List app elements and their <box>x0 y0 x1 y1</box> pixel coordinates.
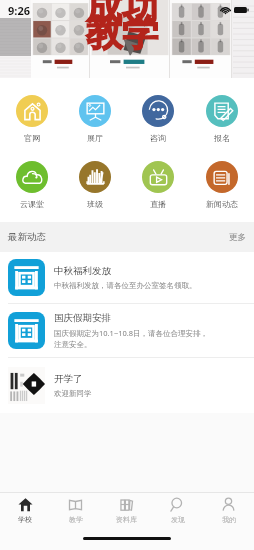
staticText: 国庆假期定为10.1~10.8日，请各位合理安排， 注意安全。 <box>54 328 209 349</box>
staticText: 最新动态 <box>8 231 46 243</box>
staticText: 直播 <box>150 199 166 209</box>
staticText: 新闻动态 <box>206 199 238 209</box>
staticText: 发现 <box>171 515 185 524</box>
button[interactable]: 发现 <box>152 497 203 524</box>
staticText: 成功 <box>86 0 158 30</box>
button[interactable]: 教学 <box>50 497 101 524</box>
button[interactable]: 官网 <box>0 95 63 143</box>
staticText: 教学 <box>86 10 158 55</box>
button[interactable]: 云课堂 <box>0 161 63 209</box>
staticText: 我的 <box>222 515 236 524</box>
staticText: 开学了 <box>54 373 83 385</box>
staticText: 中秋福利发放 <box>54 265 111 277</box>
button[interactable]: 中秋福利发放 <box>0 252 254 303</box>
staticText: 9:26 <box>8 3 30 18</box>
staticText: 云课堂 <box>20 199 44 209</box>
staticText: 教学 <box>69 515 83 524</box>
staticText: 学校 <box>18 515 32 524</box>
button[interactable]: 班级 <box>63 161 126 209</box>
button[interactable]: 更多 <box>229 232 246 243</box>
staticText: 报名 <box>214 133 230 143</box>
button[interactable]: 开学了 <box>0 358 254 413</box>
staticText: 官网 <box>24 133 40 143</box>
button[interactable]: 直播 <box>126 161 190 209</box>
staticText: 咨询 <box>150 133 166 143</box>
staticText: 国庆假期安排 <box>54 312 111 324</box>
staticText: 中秋福利发放，请各位至办公室签名领取。 <box>54 281 197 290</box>
staticText: 欢迎新同学 <box>54 389 92 398</box>
button[interactable]: 国庆假期安排 <box>0 304 254 357</box>
button[interactable]: 报名 <box>190 95 254 143</box>
button[interactable]: 展厅 <box>63 95 126 143</box>
staticText: 更多 <box>229 232 246 243</box>
button[interactable]: 咨询 <box>126 95 190 143</box>
staticText: 展厅 <box>87 133 103 143</box>
button[interactable]: 学校 <box>0 497 50 524</box>
staticText: 资料库 <box>116 515 137 524</box>
staticText: 班级 <box>87 199 103 209</box>
button[interactable]: 资料库 <box>101 497 152 524</box>
button[interactable]: 我的 <box>203 497 254 524</box>
button[interactable]: 新闻动态 <box>190 161 254 209</box>
